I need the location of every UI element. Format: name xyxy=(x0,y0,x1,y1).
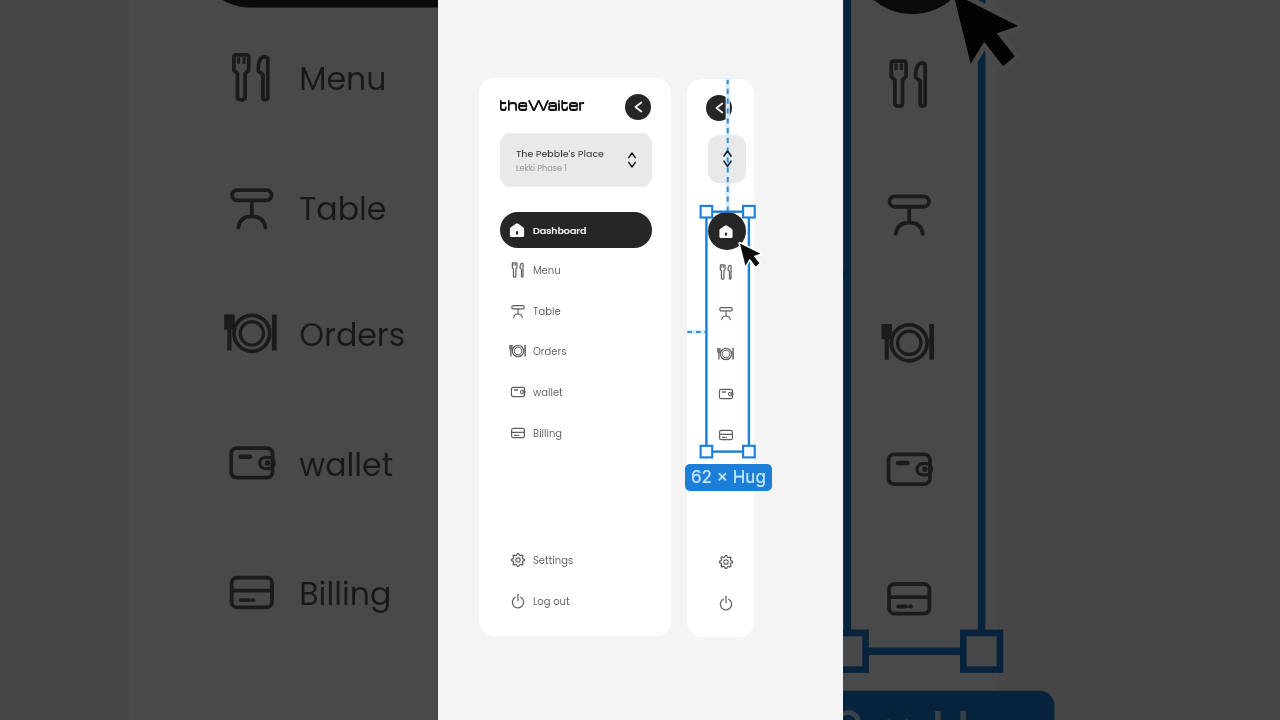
button[interactable]: Table xyxy=(859,163,960,264)
button[interactable]: Billing xyxy=(859,548,960,649)
button[interactable]: Menu xyxy=(710,256,742,288)
button[interactable]: Table xyxy=(500,294,652,328)
button[interactable]: Billing xyxy=(500,416,652,450)
button[interactable]: Menu xyxy=(500,253,652,287)
button[interactable]: Orders xyxy=(859,292,960,393)
button[interactable]: wallet xyxy=(500,375,652,409)
staticText: Menu xyxy=(299,55,388,99)
staticText: theWaiter xyxy=(499,95,585,114)
staticText: theWaiter xyxy=(499,95,585,114)
button[interactable]: Dashboard xyxy=(708,212,746,250)
staticText: Table xyxy=(299,185,388,229)
button[interactable]: Dashboard xyxy=(852,0,972,14)
button[interactable]: Menu xyxy=(859,33,960,134)
staticText: Dashboard xyxy=(533,224,587,237)
staticText: theWaiter xyxy=(499,96,585,115)
staticText: wallet xyxy=(299,441,394,485)
button[interactable]: Settings xyxy=(710,546,742,578)
button[interactable]: The Pebble's Place xyxy=(500,133,652,187)
button[interactable]: Dashboard xyxy=(500,212,652,248)
staticText: Table xyxy=(533,304,561,318)
button[interactable]: Expand sidebar xyxy=(706,95,732,121)
staticText: Billing xyxy=(533,426,563,440)
button[interactable]: Orders xyxy=(195,280,675,387)
button[interactable]: Dashboard xyxy=(195,0,675,8)
button[interactable]: Orders xyxy=(710,338,742,370)
button[interactable]: wallet xyxy=(710,378,742,410)
staticText: wallet xyxy=(533,385,563,399)
button[interactable]: Log out xyxy=(500,584,652,618)
button[interactable]: wallet xyxy=(859,419,960,520)
staticText: Orders xyxy=(533,344,567,358)
button[interactable]: Menu xyxy=(195,24,675,131)
staticText: theWaiter xyxy=(499,96,585,115)
button[interactable]: Collapse sidebar xyxy=(625,94,651,120)
button[interactable]: Log out xyxy=(710,587,742,619)
button[interactable]: Settings xyxy=(500,543,652,577)
staticText: Settings xyxy=(533,553,574,567)
button[interactable]: Billing xyxy=(710,419,742,451)
button[interactable]: wallet xyxy=(195,409,675,517)
staticText: Orders xyxy=(299,311,407,355)
button[interactable]: Switch restaurant xyxy=(708,135,746,183)
button[interactable]: Billing xyxy=(195,539,675,646)
staticText: Log out xyxy=(533,594,570,608)
staticText: 62 × Hug xyxy=(691,467,766,488)
staticText: 62 × Hug xyxy=(799,700,1036,720)
staticText: The Pebble's Place xyxy=(516,147,604,160)
staticText: Billing xyxy=(299,570,394,615)
staticText: Lekki Phase 1 xyxy=(516,162,567,173)
staticText: Menu xyxy=(533,263,561,277)
button[interactable]: Table xyxy=(710,297,742,329)
button[interactable]: Orders xyxy=(500,334,652,368)
button[interactable]: Table xyxy=(195,153,675,261)
